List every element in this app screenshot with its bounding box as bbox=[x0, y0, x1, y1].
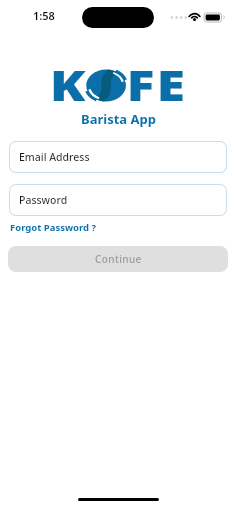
button[interactable]: Forgot Password ? bbox=[10, 221, 97, 234]
staticText: FE bbox=[127, 56, 187, 113]
staticText: Barista App bbox=[81, 110, 156, 128]
staticText: Email Address bbox=[19, 150, 90, 164]
button[interactable]: Email Address bbox=[10, 142, 226, 172]
button[interactable]: Continue bbox=[8, 246, 228, 272]
button[interactable]: Password bbox=[10, 185, 226, 215]
staticText: 1:58 bbox=[33, 8, 55, 23]
staticText: Continue bbox=[95, 252, 142, 266]
staticText: Password bbox=[19, 193, 68, 207]
staticText: K bbox=[50, 56, 86, 113]
